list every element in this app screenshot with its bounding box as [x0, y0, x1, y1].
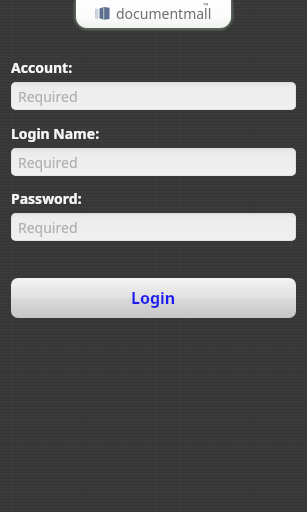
staticText: Required — [18, 153, 78, 172]
button[interactable]: Required — [11, 148, 296, 176]
staticText: Required — [18, 218, 78, 237]
staticText: Login — [131, 287, 176, 309]
staticText: Password: — [11, 189, 82, 208]
staticText: documentmall — [116, 4, 212, 23]
staticText: Login Name: — [11, 124, 100, 143]
button[interactable]: Required — [11, 82, 296, 110]
button[interactable]: Required — [11, 213, 296, 241]
staticText: Required — [18, 87, 78, 106]
staticText: ™ — [203, 1, 209, 11]
button[interactable]: Login — [11, 278, 296, 318]
other: DocumentMall logo — [95, 6, 110, 22]
staticText: Account: — [11, 58, 73, 77]
